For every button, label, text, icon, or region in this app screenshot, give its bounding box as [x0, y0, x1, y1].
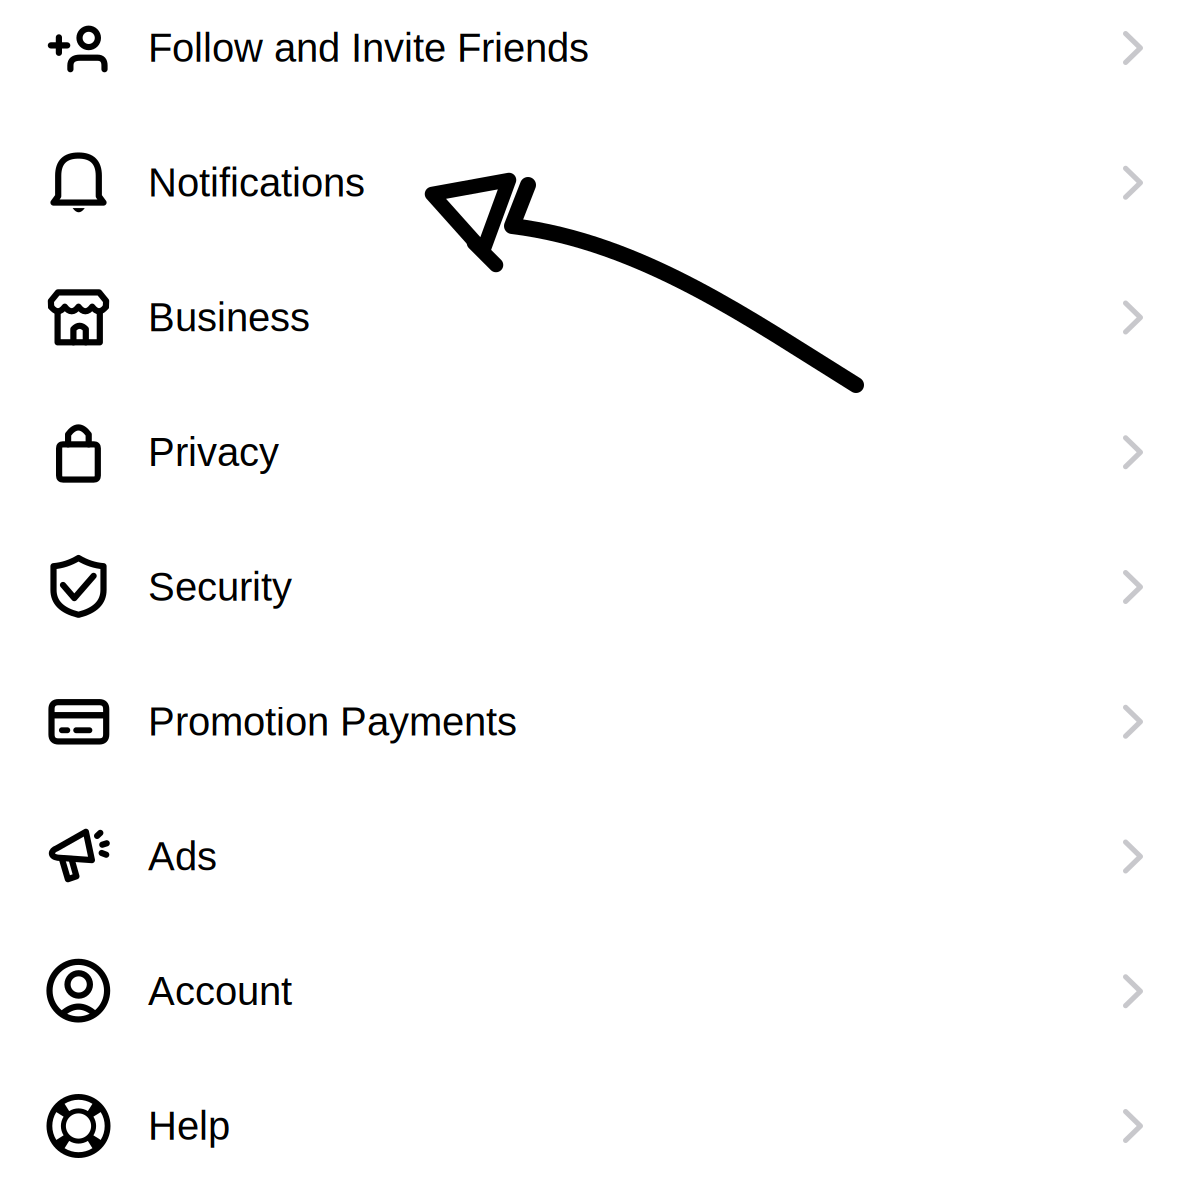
staticText: Help — [148, 1104, 230, 1148]
button[interactable]: Business — [0, 250, 1200, 385]
staticText: Security — [148, 565, 292, 609]
staticText: Account — [148, 969, 292, 1014]
button[interactable]: Help — [0, 1059, 1200, 1193]
button[interactable]: Ads — [0, 789, 1200, 924]
staticText: Promotion Payments — [148, 699, 517, 744]
staticText: Notifications — [148, 160, 365, 205]
button[interactable]: Security — [0, 520, 1200, 654]
button[interactable]: Account — [0, 924, 1200, 1059]
button[interactable]: Follow and Invite Friends — [0, 0, 1200, 115]
staticText: Ads — [148, 834, 217, 879]
staticText: Privacy — [148, 430, 279, 475]
button[interactable]: Privacy — [0, 385, 1200, 520]
staticText: Business — [148, 295, 310, 340]
button[interactable]: Notifications — [0, 115, 1200, 250]
button[interactable]: Promotion Payments — [0, 654, 1200, 789]
staticText: Follow and Invite Friends — [148, 26, 589, 70]
